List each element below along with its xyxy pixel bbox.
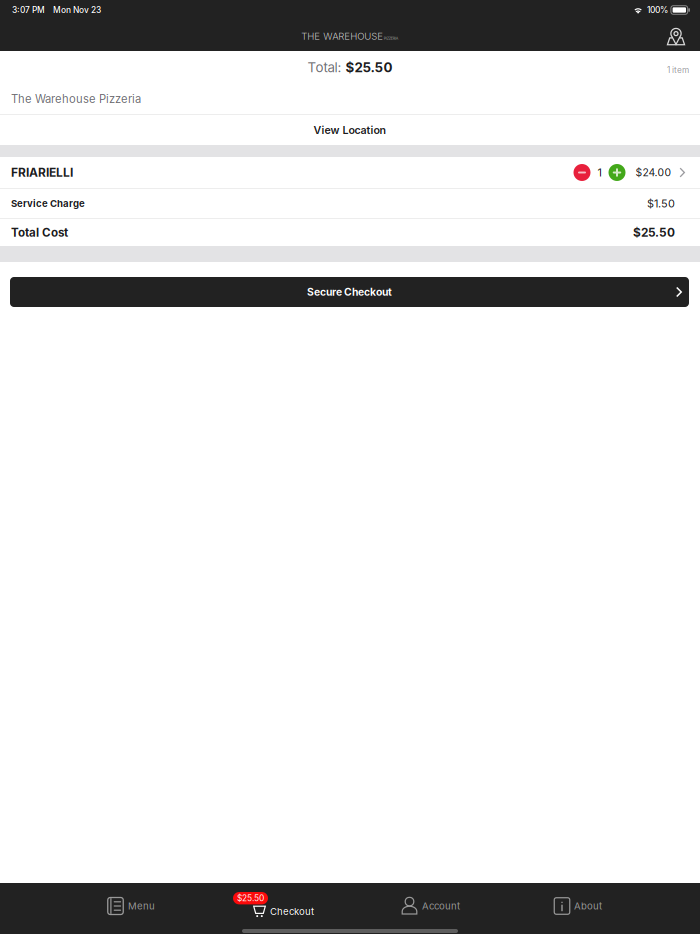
staticText: $25.50 <box>633 225 675 240</box>
staticText: FRIARIELLI <box>11 165 73 180</box>
button[interactable]: FRIARIELLI <box>0 157 700 188</box>
staticText: Total Cost <box>11 225 68 239</box>
staticText: 3:07 PM <box>12 5 45 15</box>
staticText: 1 <box>597 166 601 179</box>
staticText: View Location <box>313 123 386 136</box>
staticText: Menu <box>128 900 155 912</box>
staticText: $1.50 <box>647 197 675 210</box>
staticText: Checkout <box>270 906 314 917</box>
staticText: PIZZERIA <box>384 36 399 41</box>
button[interactable]: View Location <box>0 115 700 145</box>
staticText: Account <box>422 900 460 912</box>
staticText: About <box>574 900 602 912</box>
staticText: THE WAREHOUSE <box>301 30 383 42</box>
staticText: The Warehouse Pizzeria <box>11 92 141 106</box>
staticText: 100% <box>647 5 668 15</box>
button[interactable]: Account <box>350 892 499 920</box>
button[interactable]: Secure Checkout <box>10 277 689 307</box>
staticText: Secure Checkout <box>307 286 392 298</box>
staticText: $25.50 <box>237 893 264 903</box>
staticText: $24.00 <box>635 166 671 179</box>
staticText: Mon Nov 23 <box>53 5 101 15</box>
button[interactable]: About <box>499 892 648 920</box>
staticText: 1 item <box>667 65 689 75</box>
button[interactable]: Locations <box>659 23 693 49</box>
button[interactable]: Menu <box>52 892 201 920</box>
staticText: $25.50 <box>345 59 392 75</box>
staticText: Service Charge <box>11 198 85 209</box>
staticText: Total: <box>307 59 345 75</box>
button[interactable]: Checkout <box>201 892 350 920</box>
